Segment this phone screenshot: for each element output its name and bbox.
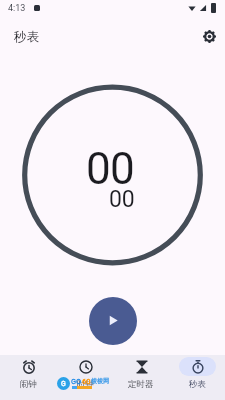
staticText: 秒表	[189, 379, 206, 390]
button[interactable]: 时钟	[57, 355, 113, 400]
staticText: 60	[82, 377, 91, 386]
button[interactable]	[89, 297, 137, 345]
staticText: 4:13	[8, 3, 26, 14]
button[interactable]: 秒表	[169, 355, 225, 400]
staticText: 时钟	[77, 379, 94, 390]
button[interactable]: 定时器	[113, 355, 169, 400]
staticText: 00	[109, 186, 135, 213]
staticText: 闹钟	[20, 379, 37, 390]
button[interactable]	[199, 26, 219, 46]
staticText: 秒表	[14, 29, 39, 45]
staticText: 棱棱网	[91, 377, 109, 385]
button[interactable]: 闹钟	[0, 355, 57, 400]
staticText: GO	[71, 377, 82, 386]
staticText: G	[61, 380, 66, 388]
staticText: 定时器	[128, 379, 154, 390]
staticText: 00	[86, 143, 135, 195]
